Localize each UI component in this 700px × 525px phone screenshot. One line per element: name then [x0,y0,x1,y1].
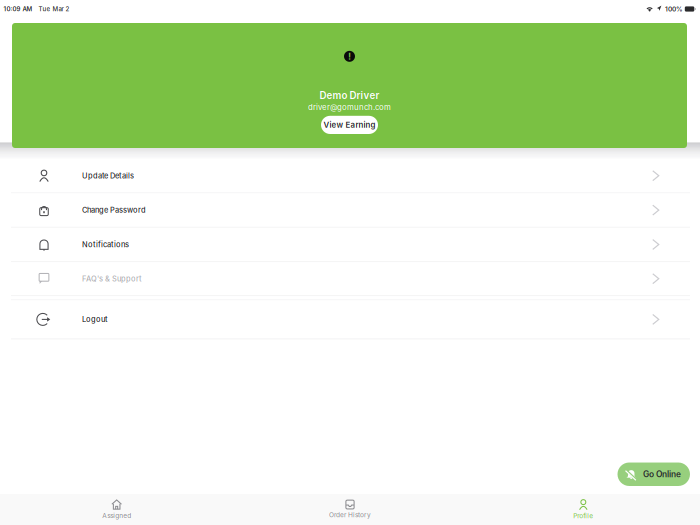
button[interactable]: Update Details [0,159,700,192]
staticText: 10:09 AM [3,5,32,13]
staticText: Tue Mar 2 [38,5,69,13]
button[interactable]: View Earning [321,116,378,134]
button[interactable]: Order History [233,494,467,525]
staticText: driver@gomunch.com [308,102,391,112]
staticText: Demo Driver [319,90,379,101]
button[interactable]: Assigned [0,494,233,525]
button[interactable]: Profile [467,494,700,525]
staticText: Go Online [643,469,681,479]
button[interactable]: Notifications [0,228,700,261]
button[interactable]: Logout [0,300,700,338]
staticText: Logout [82,315,108,324]
button[interactable]: Change Password [0,193,700,227]
staticText: Update Details [82,171,134,180]
staticText: Change Password [82,206,146,215]
staticText: Assigned [102,511,131,519]
staticText: ! [348,51,351,62]
staticText: View Earning [323,120,375,130]
staticText: Order History [329,511,371,519]
staticText: FAQ's & Support [82,274,142,283]
staticText: 100% [665,5,683,13]
staticText: Notifications [82,240,129,249]
button[interactable]: FAQ's & Support [0,262,700,295]
staticText: Profile [573,512,593,520]
button[interactable]: Go Online [617,462,690,486]
